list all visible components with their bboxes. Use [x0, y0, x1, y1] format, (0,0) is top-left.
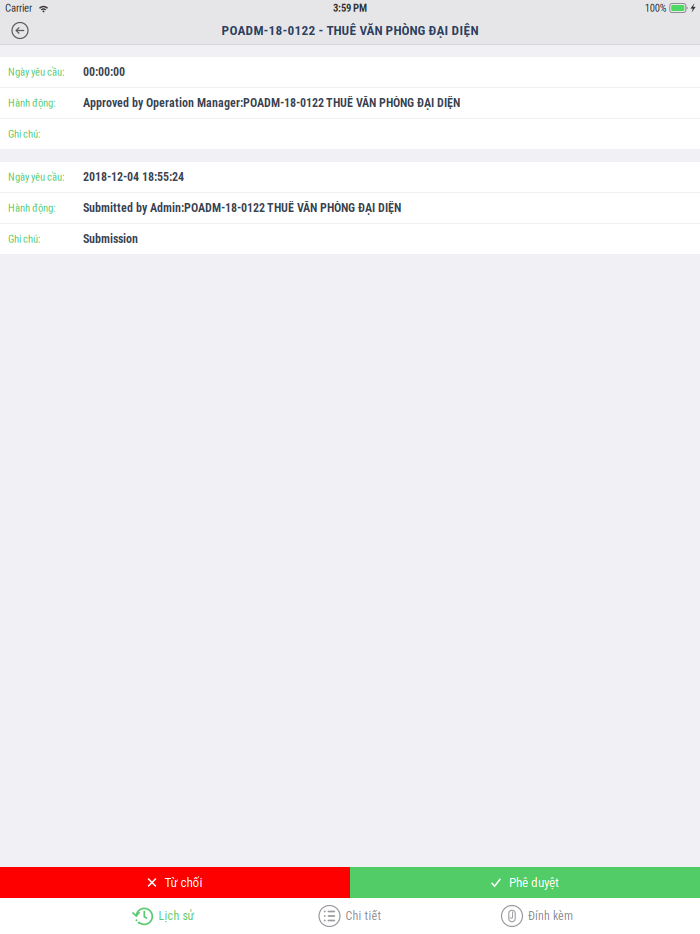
staticText: Carrier: [5, 2, 32, 14]
staticText: Approved by Operation Manager:POADM-18-0…: [83, 96, 460, 110]
staticText: Ghi chú:: [8, 128, 40, 140]
staticText: 2018-12-04 18:55:24: [83, 170, 184, 184]
staticText: Đính kèm: [528, 909, 573, 923]
staticText: 00:00:00: [83, 65, 125, 79]
staticText: POADM-18-0122 - THUÊ VĂN PHÒNG ĐẠI DIỆN: [221, 23, 478, 38]
staticText: Submitted by Admin:POADM-18-0122 THUÊ VĂ…: [83, 201, 401, 215]
button[interactable]: Đính kèm: [443, 898, 630, 934]
staticText: Hành động:: [8, 97, 55, 109]
button[interactable]: Back: [0, 18, 32, 42]
staticText: Từ chối: [164, 875, 202, 890]
staticText: 3:59 PM: [333, 2, 367, 14]
staticText: Hành động:: [8, 202, 55, 214]
staticText: Lịch sử: [158, 909, 194, 923]
staticText: Ngày yêu cầu:: [8, 66, 64, 78]
staticText: Ngày yêu cầu:: [8, 171, 64, 183]
button[interactable]: Phê duyệt: [350, 867, 700, 898]
button[interactable]: Chi tiết: [256, 898, 443, 934]
staticText: Chi tiết: [345, 909, 381, 923]
staticText: 100%: [645, 2, 667, 14]
staticText: Phê duyệt: [509, 875, 559, 890]
button[interactable]: Từ chối: [0, 867, 350, 898]
staticText: Ghi chú:: [8, 233, 40, 245]
staticText: Submission: [83, 232, 138, 246]
button[interactable]: Lịch sử: [69, 898, 256, 934]
